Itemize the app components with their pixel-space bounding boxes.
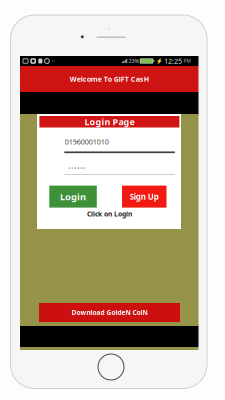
staticText: 12:25 [164, 56, 182, 66]
staticText: PM [183, 58, 190, 64]
staticText: Sign Up [130, 191, 159, 202]
staticText: •••••• [68, 164, 86, 173]
staticText: 23% [129, 57, 139, 65]
button[interactable]: Download GoldeN CoiN [39, 303, 180, 322]
staticText: Welcome To GiFT CasH [70, 74, 149, 84]
staticText: Click on Login [87, 209, 132, 218]
staticText: ⚡ [156, 58, 163, 64]
button[interactable]: Login [49, 186, 97, 208]
button[interactable]: Sign Up [122, 186, 166, 208]
staticText: 01960001010 [65, 137, 109, 146]
staticText: Login [60, 190, 86, 203]
staticText: Download GoldeN CoiN [71, 308, 147, 317]
staticText: Login Page [84, 116, 134, 128]
